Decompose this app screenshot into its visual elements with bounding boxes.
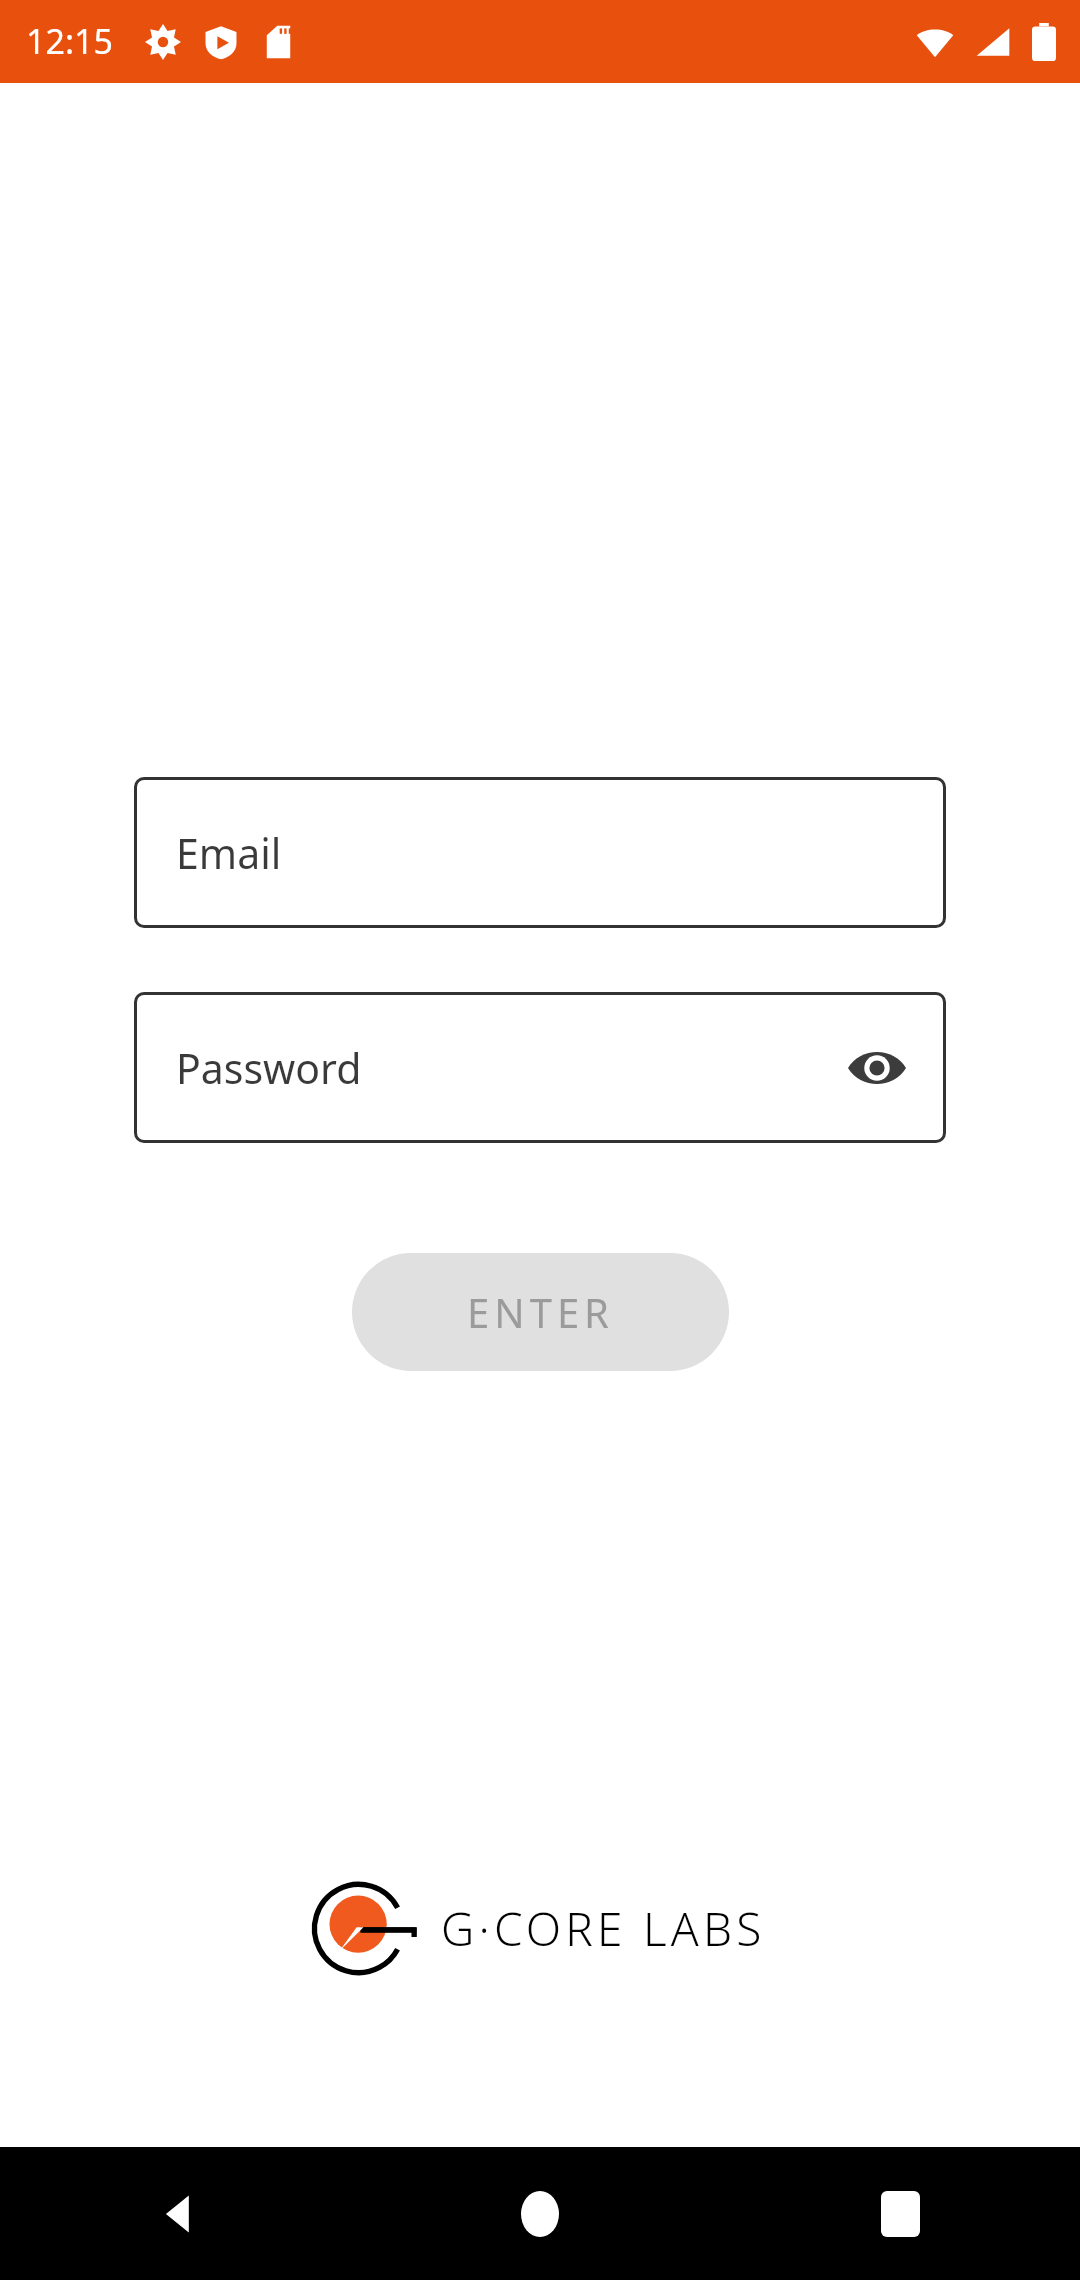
button[interactable]: Show password	[846, 1044, 908, 1092]
button[interactable]: Back	[0, 2147, 360, 2280]
staticText: 12:15	[26, 18, 113, 64]
button[interactable]: Password	[134, 992, 946, 1143]
button[interactable]: Home	[360, 2147, 720, 2280]
staticText: ENTER	[467, 1285, 614, 1339]
staticText: Password	[176, 1040, 362, 1096]
button[interactable]: Email	[134, 777, 946, 928]
staticText: G·CORE LABS	[441, 1897, 766, 1960]
button[interactable]: ENTER	[352, 1253, 729, 1371]
staticText: Email	[176, 825, 282, 881]
button[interactable]: Recent apps	[720, 2147, 1080, 2280]
